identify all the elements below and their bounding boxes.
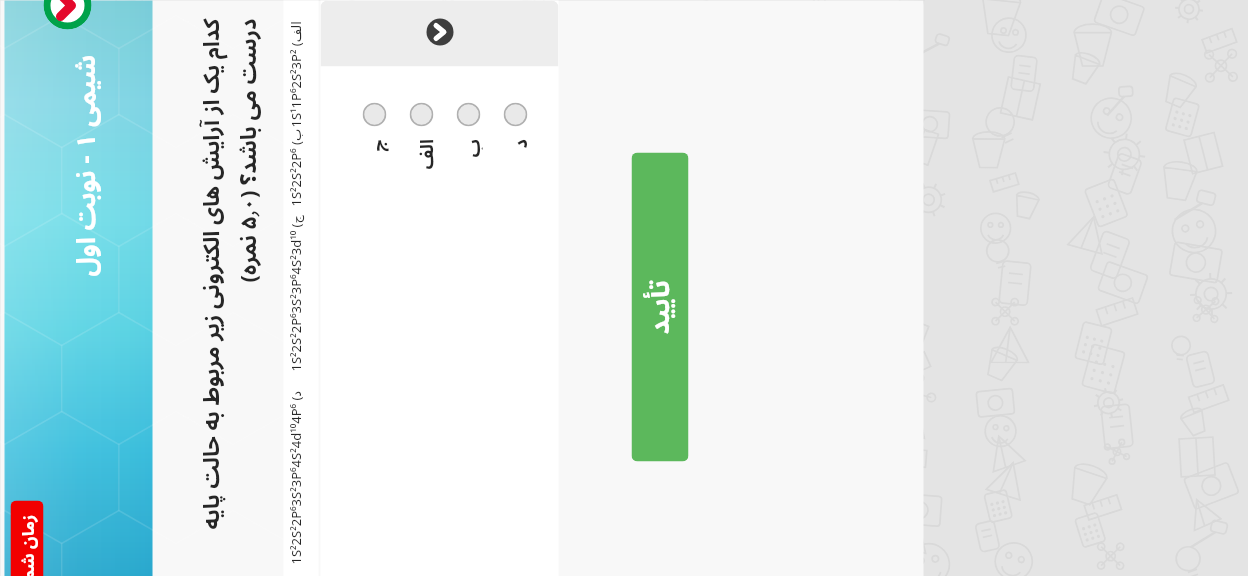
staticText: الف (407, 138, 435, 169)
staticText: زمان شما (10, 514, 43, 576)
button[interactable]: Back (43, 0, 91, 29)
button[interactable]: Expand options (320, 0, 558, 66)
staticText: 1S²2S²2P⁶3S²3P⁶4S²4d¹⁰4P⁶ (د (286, 390, 304, 564)
staticText: 1S²2S²2P⁶ (ب (286, 128, 304, 206)
button[interactable]: د (501, 102, 529, 186)
staticText: ج (360, 138, 388, 151)
button[interactable]: ب (454, 102, 482, 186)
button[interactable]: زمان شما (10, 500, 43, 576)
staticText: ب (454, 138, 482, 157)
staticText: 1S²2S²2P⁶3S²3P⁶4S²3d¹⁰ (ج (286, 214, 304, 371)
staticText: کدام یک از آرایش های الکترونی زیر مربوط … (188, 18, 234, 529)
staticText: 1S¹1P⁶2S²3P² (الف (286, 20, 304, 127)
staticText: تأیید (631, 279, 688, 334)
staticText: د (501, 138, 529, 148)
button[interactable]: ج (360, 102, 388, 186)
staticText: شیمی ۱ - نوبت اول (58, 54, 106, 276)
button[interactable]: تأیید (631, 152, 688, 461)
staticText: درست می باشد؟ (۵٫۰ نمره) (225, 18, 271, 282)
button[interactable]: الف (407, 102, 435, 186)
